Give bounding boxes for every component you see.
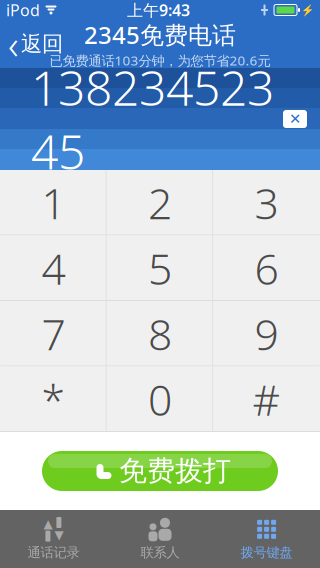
- staticText: 通话记录: [27, 544, 79, 561]
- button[interactable]: 联系人: [107, 510, 213, 568]
- staticText: 拨号键盘: [241, 544, 293, 561]
- button[interactable]: #: [213, 366, 320, 432]
- staticText: ✕: [289, 111, 301, 127]
- staticText: 4: [41, 240, 65, 297]
- staticText: 2: [148, 174, 172, 231]
- staticText: ⚡: [301, 4, 314, 16]
- button[interactable]: 6: [213, 235, 320, 301]
- button[interactable]: 2: [107, 170, 213, 235]
- button[interactable]: ‹: [0, 22, 71, 66]
- button[interactable]: ▲: [0, 510, 107, 568]
- button[interactable]: 3: [213, 170, 320, 235]
- button[interactable]: 0: [107, 366, 213, 432]
- staticText: 7: [41, 305, 65, 362]
- button[interactable]: 7: [0, 301, 107, 366]
- button[interactable]: *: [0, 366, 107, 432]
- button[interactable]: 1: [0, 170, 107, 235]
- staticText: 免费拨打: [119, 454, 231, 488]
- staticText: 3: [255, 174, 279, 231]
- button[interactable]: 删除: [274, 97, 316, 141]
- staticText: 9: [255, 305, 279, 362]
- staticText: 13823452345: [31, 55, 274, 183]
- button[interactable]: 拨号键盘: [213, 510, 320, 568]
- staticText: ‹: [8, 17, 19, 70]
- button[interactable]: 免费拨打: [42, 451, 278, 491]
- staticText: 联系人: [140, 544, 179, 561]
- staticText: 8: [148, 305, 172, 362]
- staticText: 6: [255, 240, 279, 297]
- staticText: *: [41, 371, 65, 428]
- button[interactable]: 8: [107, 301, 213, 366]
- staticText: #: [253, 371, 281, 428]
- button[interactable]: 9: [213, 301, 320, 366]
- staticText: ▼: [54, 528, 63, 542]
- staticText: iPod: [6, 0, 40, 21]
- staticText: ▲: [43, 517, 52, 531]
- staticText: 0: [148, 371, 172, 428]
- staticText: 2345免费电话: [84, 19, 236, 51]
- staticText: 5: [148, 240, 172, 297]
- button[interactable]: 5: [107, 235, 213, 301]
- staticText: 已免费通话103分钟，为您节省20.6元: [49, 52, 270, 69]
- staticText: 上午9:43: [127, 0, 190, 21]
- staticText: 1: [41, 174, 65, 231]
- staticText: 返回: [21, 31, 63, 57]
- button[interactable]: 4: [0, 235, 107, 301]
